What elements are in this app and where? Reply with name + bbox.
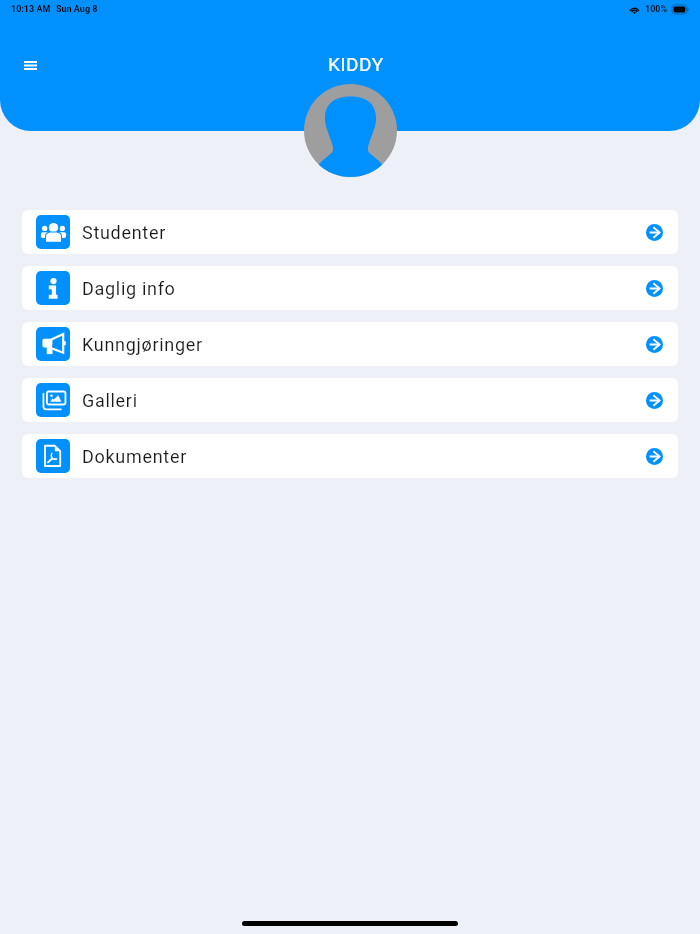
button[interactable]: Open navigation menu xyxy=(14,49,47,82)
button[interactable]: Studenter xyxy=(22,210,678,254)
staticText: Kunngjøringer xyxy=(82,334,203,355)
button[interactable]: Galleri xyxy=(22,378,678,422)
staticText: KIDDY xyxy=(328,53,384,75)
button[interactable]: Kunngjøringer xyxy=(22,322,678,366)
button[interactable]: Daglig info xyxy=(22,266,678,310)
staticText: Galleri xyxy=(82,390,138,411)
button[interactable]: Dokumenter xyxy=(22,434,678,478)
staticText: Sun Aug 8 xyxy=(56,4,98,15)
staticText: 100% xyxy=(645,4,668,15)
button[interactable]: Profile picture xyxy=(304,84,397,177)
staticText: Daglig info xyxy=(82,278,176,299)
staticText: Dokumenter xyxy=(82,446,187,467)
staticText: Studenter xyxy=(82,222,166,243)
staticText: 10:13 AM xyxy=(11,4,51,15)
